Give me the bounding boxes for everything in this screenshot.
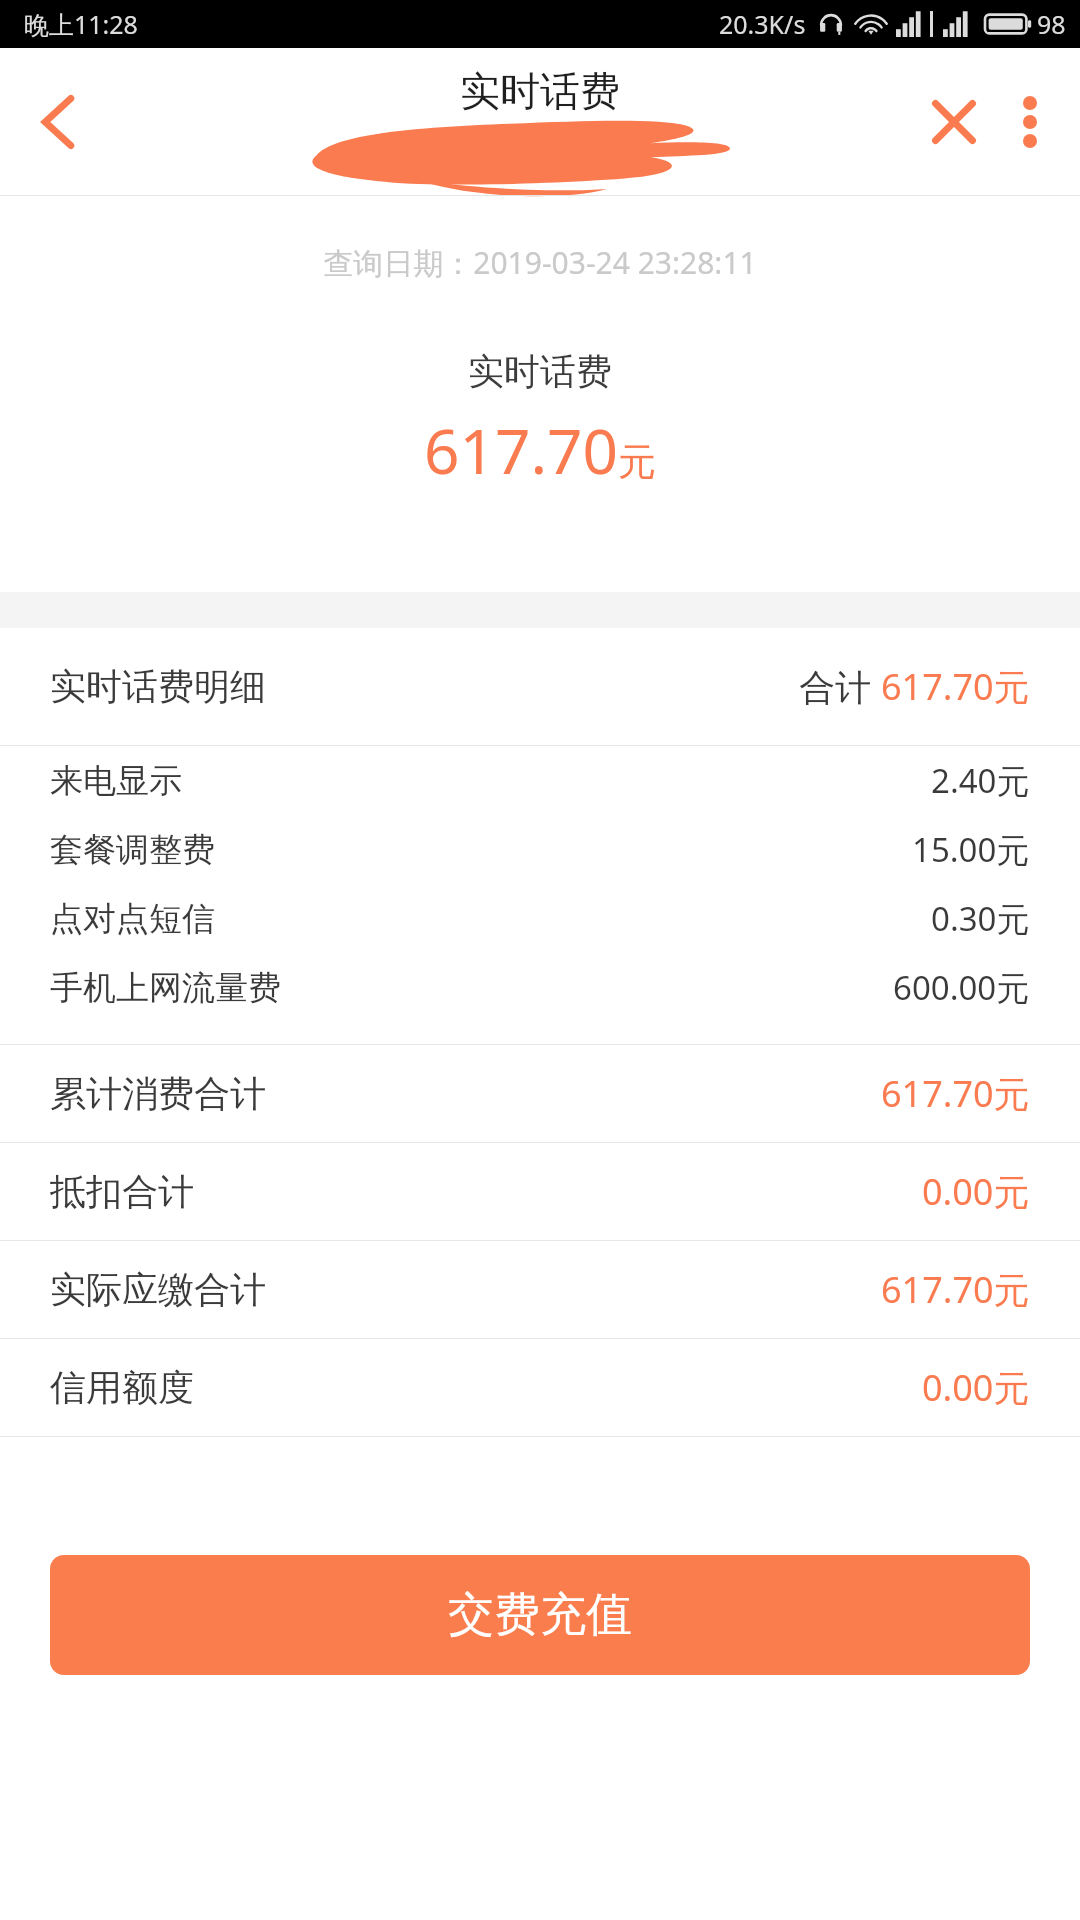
button[interactable]: 信用额度 [0, 1339, 1080, 1436]
staticText: 交费充值 [448, 1586, 632, 1644]
staticText: 合计 [799, 662, 881, 711]
button[interactable]: 累计消费合计 [0, 1045, 1080, 1142]
staticText: 2.40元 [931, 758, 1030, 803]
staticText: 600.00元 [893, 965, 1030, 1010]
button[interactable]: 实际应缴合计 [0, 1241, 1080, 1338]
staticText: 点对点短信 [50, 898, 215, 940]
staticText: 实时话费 [460, 66, 620, 116]
staticText: 元 [618, 438, 656, 486]
staticText: 查询日期：2019-03-24 23:28:11 [0, 242, 1080, 283]
staticText: 0.00元 [922, 1363, 1030, 1412]
staticText: 617.70 [424, 408, 618, 492]
staticText: 15.00元 [912, 827, 1030, 872]
button[interactable]: Close [908, 76, 1000, 168]
staticText: 晚上11:28 [24, 7, 138, 41]
button[interactable]: 套餐调整费 [0, 815, 1080, 884]
button[interactable]: 抵扣合计 [0, 1143, 1080, 1240]
staticText: 20.3K/s [719, 7, 806, 41]
staticText: 来电显示 [50, 760, 182, 802]
button[interactable]: 点对点短信 [0, 884, 1080, 953]
staticText: 0.00元 [922, 1167, 1030, 1216]
staticText: 617.70元 [881, 1265, 1030, 1314]
button[interactable]: More options [988, 80, 1072, 164]
staticText: 套餐调整费 [50, 829, 215, 871]
staticText: 617.70元 [881, 1069, 1030, 1118]
staticText: 累计消费合计 [50, 1071, 266, 1116]
button[interactable]: Back [10, 74, 106, 170]
staticText: 信用额度 [50, 1365, 194, 1410]
staticText: 实际应缴合计 [50, 1267, 266, 1312]
button[interactable]: 交费充值 [50, 1555, 1030, 1675]
button[interactable]: 来电显示 [0, 746, 1080, 815]
staticText: 617.70元 [881, 662, 1030, 711]
staticText: 实时话费明细 [50, 664, 266, 709]
staticText: 抵扣合计 [50, 1169, 194, 1214]
staticText: 实时话费 [0, 349, 1080, 394]
button[interactable]: 实时话费明细 [0, 628, 1080, 745]
staticText: 0.30元 [931, 896, 1030, 941]
staticText: 手机上网流量费 [50, 967, 281, 1009]
staticText: 98 [1037, 7, 1066, 41]
button[interactable]: 手机上网流量费 [0, 953, 1080, 1022]
